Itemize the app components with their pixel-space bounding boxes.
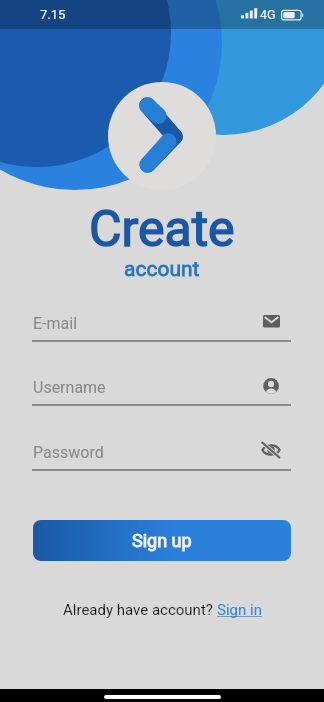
staticText: Password — [33, 443, 104, 462]
staticText: Sign up — [132, 530, 192, 551]
staticText: account — [124, 257, 200, 282]
button[interactable]: Sign up — [33, 520, 291, 561]
staticText: E-mail — [33, 314, 78, 333]
button[interactable]: Username — [32, 371, 291, 405]
staticText: Sign in — [217, 601, 262, 619]
button[interactable]: Username — [259, 372, 291, 402]
button[interactable]: E-mail — [259, 308, 291, 338]
button[interactable]: Sign in — [217, 601, 262, 619]
button[interactable]: Password — [32, 436, 291, 470]
button[interactable]: E-mail — [32, 307, 291, 341]
staticText: Create — [89, 200, 235, 259]
staticText: 7.15 — [40, 7, 66, 22]
staticText: Username — [33, 378, 106, 397]
staticText: Already have account? — [63, 601, 217, 619]
staticText: 4G — [260, 7, 276, 22]
button[interactable]: Show password — [259, 437, 291, 467]
